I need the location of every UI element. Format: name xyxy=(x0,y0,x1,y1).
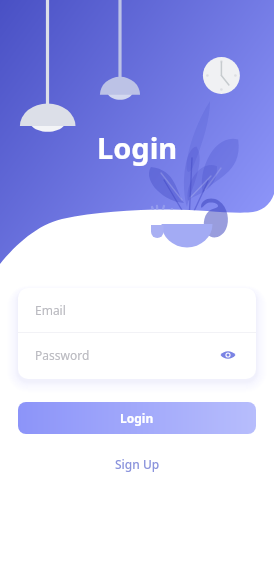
button[interactable]: Email xyxy=(18,288,256,332)
staticText: Login xyxy=(120,410,154,426)
button[interactable]: Login xyxy=(18,402,256,434)
button[interactable]: Password xyxy=(18,333,256,379)
button[interactable]: Show password xyxy=(217,345,239,367)
staticText: Password xyxy=(35,347,90,363)
staticText: Login xyxy=(97,128,178,167)
staticText: Email xyxy=(35,302,66,318)
button[interactable]: Sign Up xyxy=(115,456,160,472)
